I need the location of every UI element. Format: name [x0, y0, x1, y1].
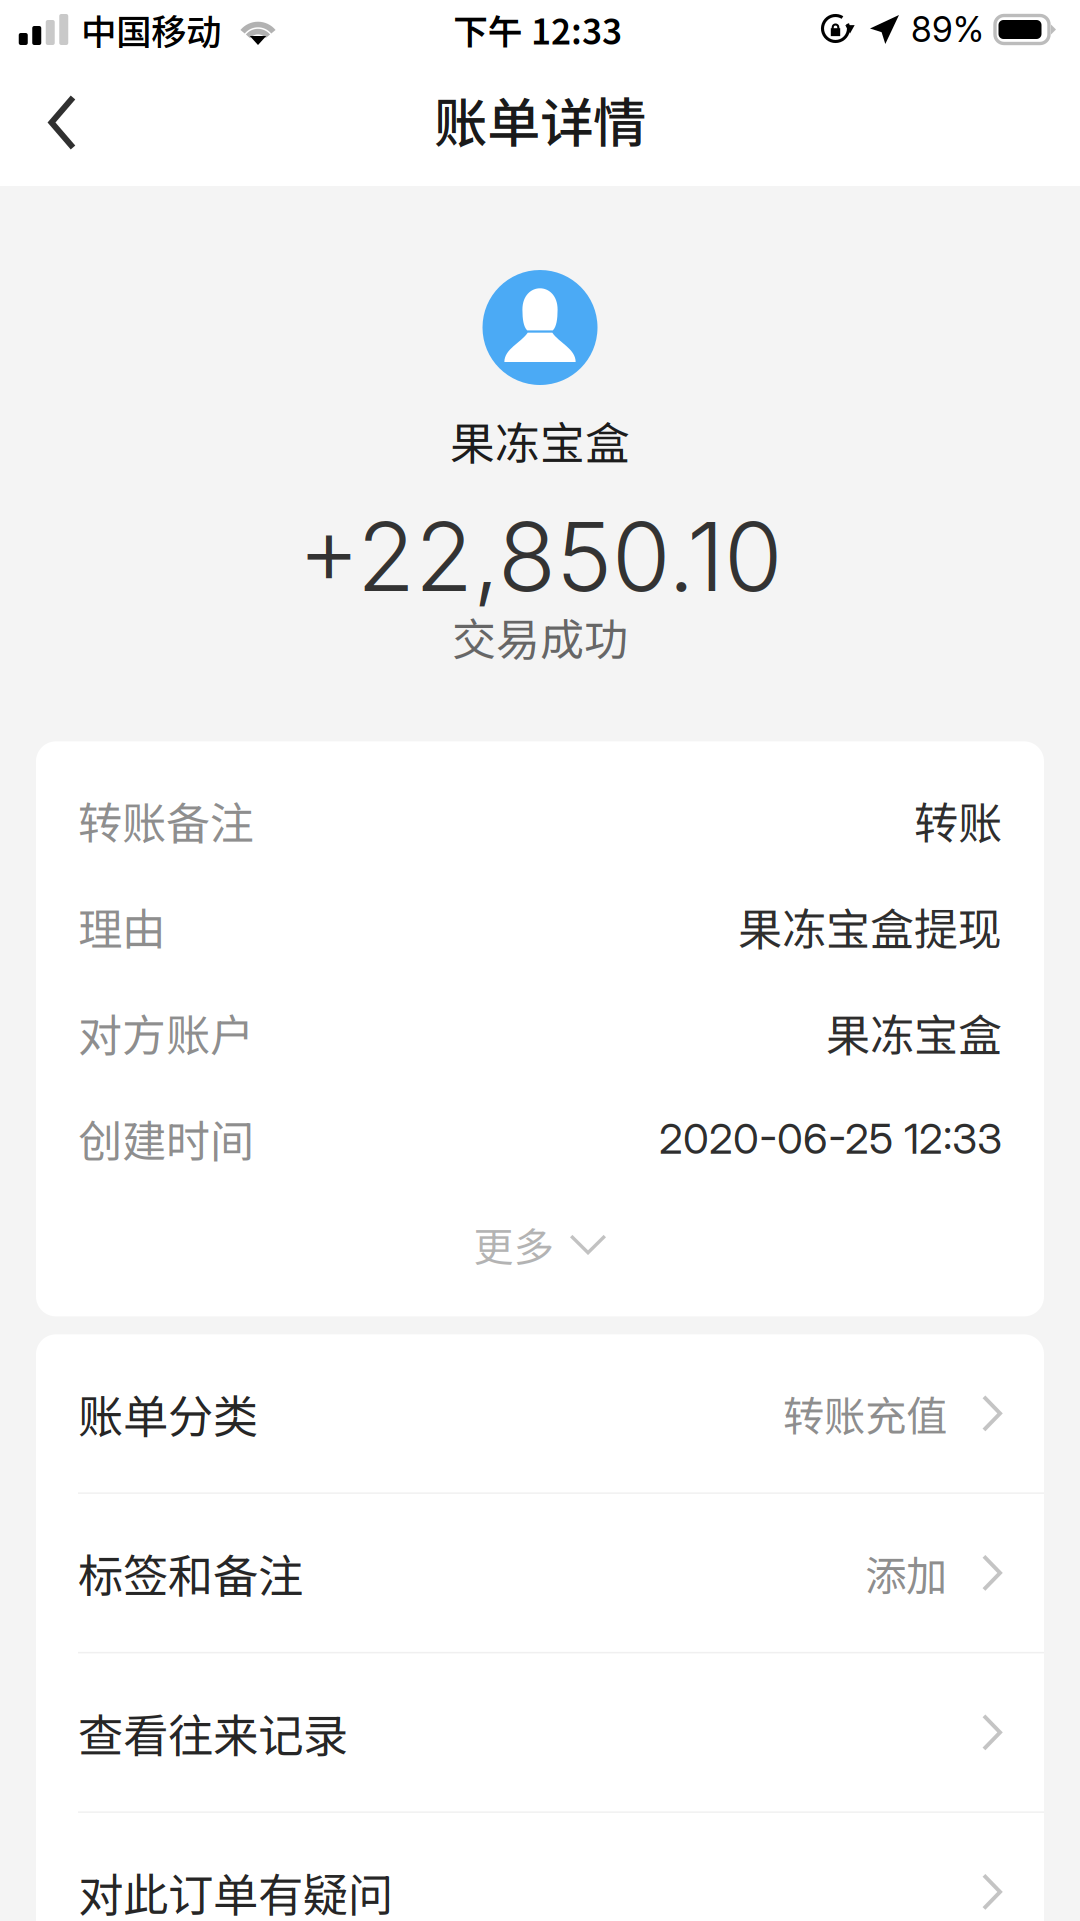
staticText: 2020-06-25 12:33: [659, 1113, 1002, 1164]
button[interactable]: 标签和备注: [36, 1494, 1044, 1652]
staticText: 果冻宝盒: [450, 408, 630, 473]
staticText: 果冻宝盒提现: [738, 894, 1002, 958]
staticText: 下午 12:33: [453, 4, 622, 55]
staticText: 添加: [865, 1543, 947, 1603]
staticText: 转账: [914, 788, 1002, 852]
staticText: 对此订单有疑问: [78, 1859, 393, 1921]
staticText: 中国移动: [81, 4, 221, 55]
staticText: 创建时间: [78, 1106, 254, 1170]
staticText: 查看往来记录: [78, 1700, 348, 1765]
button[interactable]: 查看往来记录: [36, 1653, 1044, 1811]
button[interactable]: 对此订单有疑问: [36, 1813, 1044, 1921]
staticText: 转账备注: [78, 788, 254, 852]
staticText: +22,850.10: [298, 499, 782, 614]
staticText: 账单详情: [434, 81, 646, 158]
button[interactable]: 更多: [78, 1191, 1002, 1303]
staticText: 标签和备注: [78, 1540, 303, 1606]
staticText: 更多: [473, 1215, 553, 1273]
staticText: 89%: [911, 8, 984, 50]
staticText: 对方账户: [78, 1000, 254, 1064]
staticText: 转账充值: [783, 1383, 947, 1443]
staticText: 果冻宝盒: [826, 1000, 1002, 1064]
staticText: 账单分类: [78, 1381, 258, 1446]
staticText: 交易成功: [452, 605, 628, 668]
button[interactable]: Back: [0, 59, 111, 186]
staticText: 理由: [78, 894, 166, 958]
button[interactable]: 账单分类: [36, 1334, 1044, 1492]
